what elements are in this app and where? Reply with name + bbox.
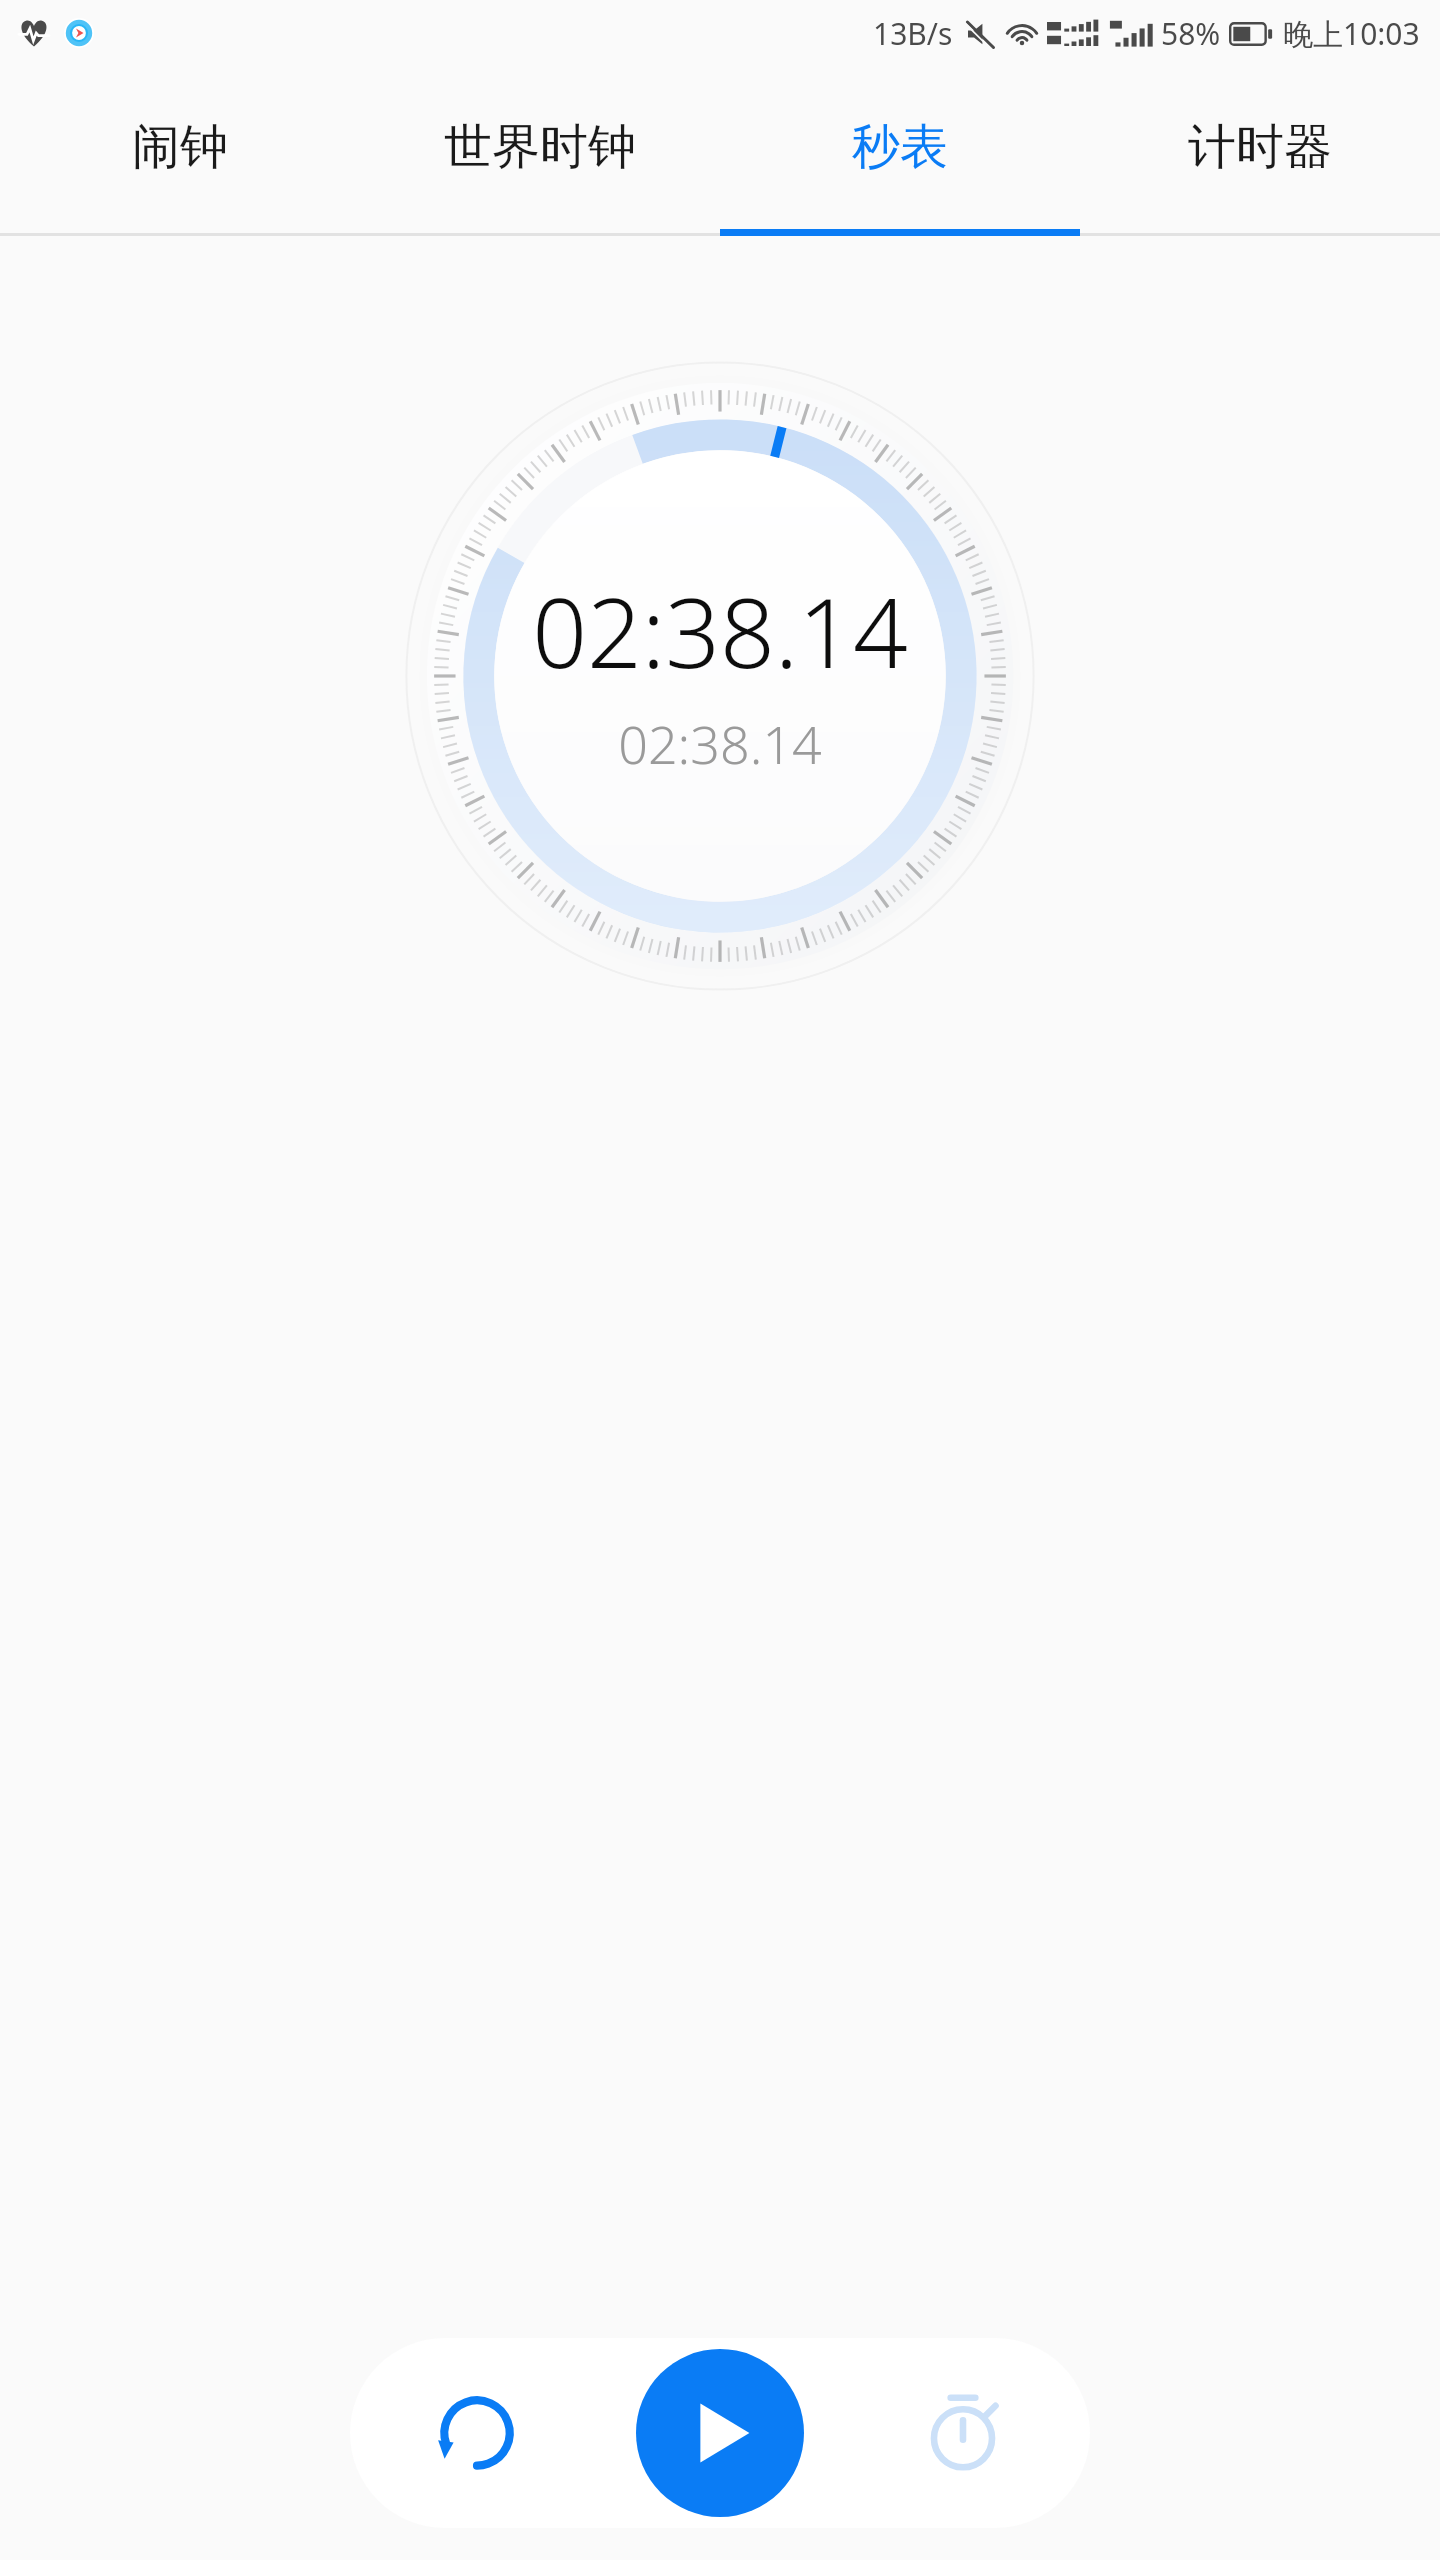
staticText: 58% bbox=[1161, 13, 1221, 54]
button[interactable]: 计时器 bbox=[1080, 66, 1440, 236]
staticText: 计时器 bbox=[1188, 117, 1332, 177]
button[interactable]: 世界时钟 bbox=[360, 66, 720, 236]
staticText: 13B/s bbox=[873, 13, 953, 54]
staticText: 02:38.14 bbox=[618, 708, 822, 779]
button[interactable]: Lap bbox=[898, 2368, 1028, 2498]
button[interactable]: 闹钟 bbox=[0, 66, 360, 236]
button[interactable]: Reset bbox=[412, 2368, 542, 2498]
button[interactable]: Start bbox=[636, 2349, 804, 2517]
staticText: 晚上10:03 bbox=[1283, 13, 1420, 54]
staticText: 闹钟 bbox=[132, 117, 228, 177]
staticText: 秒表 bbox=[852, 117, 948, 177]
staticText: 02:38.14 bbox=[532, 565, 908, 696]
staticText: 世界时钟 bbox=[444, 117, 636, 177]
button[interactable]: 秒表 bbox=[720, 66, 1080, 236]
